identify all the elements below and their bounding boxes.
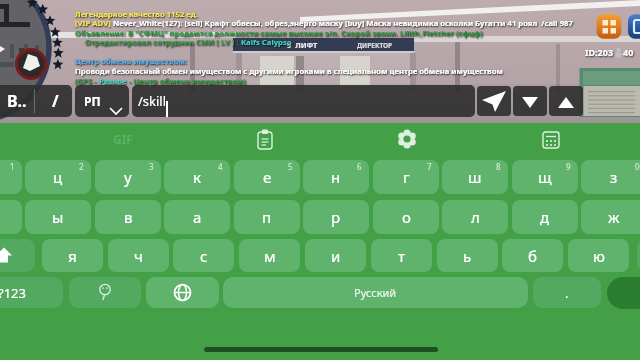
staticText: л [471, 207, 480, 227]
button[interactable]: ж [581, 200, 640, 234]
staticText: з [610, 167, 618, 187]
staticText: н [331, 167, 341, 187]
button[interactable]: а [164, 200, 230, 234]
button[interactable]: д [512, 200, 578, 234]
staticText: 8 [496, 161, 501, 172]
staticText: ш [468, 167, 482, 187]
staticText: /skill [138, 92, 167, 110]
button[interactable]: т [371, 239, 432, 272]
button[interactable]: ш [442, 160, 508, 194]
button[interactable]: Send [477, 86, 511, 116]
staticText: г [403, 167, 410, 187]
staticText: ц [53, 167, 63, 187]
button[interactable]: Change keyboard language [146, 277, 219, 308]
staticText: и [331, 246, 341, 266]
button[interactable]: . [533, 277, 601, 308]
button[interactable]: л [442, 200, 508, 234]
staticText: Объявление: В "СФМЦ" продаются должности… [75, 28, 483, 38]
staticText: 2 [79, 161, 84, 172]
button[interactable]: Scroll chat down [513, 86, 547, 116]
staticText: Never_White(127): [sell] Крафт обвесы, о… [113, 18, 573, 28]
button[interactable]: GIF [101, 126, 145, 152]
staticText: р [331, 207, 341, 227]
staticText: б [528, 246, 537, 266]
button[interactable]: ф [0, 200, 22, 234]
button[interactable]: о [373, 200, 439, 234]
staticText: 9 ЛИФТ [287, 40, 318, 50]
button[interactable]: Scroll chat up [549, 86, 583, 116]
button[interactable]: Settings [391, 126, 423, 152]
button[interactable]: й [0, 160, 22, 194]
button[interactable]: Enter [607, 277, 640, 309]
button[interactable]: Clipboard [249, 127, 281, 153]
button[interactable]: щ [512, 160, 578, 194]
button[interactable]: Shift [0, 239, 35, 272]
staticText: [VIP ADV] [75, 18, 113, 28]
staticText: щ [538, 167, 552, 187]
staticText: 6 [357, 161, 362, 172]
staticText: РП [84, 93, 101, 109]
staticText: Kaifs Calypso [241, 37, 292, 47]
button[interactable]: ю [568, 239, 629, 272]
button[interactable]: Backspace [637, 239, 640, 272]
button[interactable]: ?123 [0, 277, 63, 308]
button[interactable]: Emoji [69, 277, 141, 308]
staticText: д [540, 207, 550, 227]
staticText: 40 [623, 46, 634, 58]
staticText: 1 [10, 161, 15, 172]
staticText: 5 [288, 161, 293, 172]
staticText: к [193, 167, 201, 187]
staticText: а [193, 207, 202, 227]
button[interactable]: РП [75, 85, 129, 117]
staticText: Центр обмена имуществом: [75, 56, 188, 66]
button[interactable]: ч [108, 239, 169, 272]
button[interactable]: Numbers [535, 127, 567, 153]
button[interactable]: / [38, 85, 72, 117]
staticText: (GPS - [75, 76, 99, 86]
staticText: п [262, 207, 272, 227]
button[interactable]: г [373, 160, 439, 194]
staticText: в [124, 207, 133, 227]
staticText: Проводи безопасный обмен имуществом с др… [75, 66, 503, 76]
staticText: ь [463, 246, 472, 266]
staticText: Легендарное качество 1152 ед. [75, 9, 198, 19]
button[interactable]: /skill [132, 85, 475, 117]
staticText: ч [134, 246, 143, 266]
button[interactable]: у [95, 160, 161, 194]
staticText: ДИРЕКТОР [357, 41, 393, 50]
button[interactable]: м [239, 239, 300, 272]
staticText: ы [52, 207, 64, 227]
staticText: Отредактировал сотрудник СМИ [ LV ] : [85, 37, 241, 47]
button[interactable]: и [305, 239, 366, 272]
staticText: Разное [99, 76, 127, 86]
button[interactable]: е [234, 160, 300, 194]
staticText: 0 [635, 161, 640, 172]
button[interactable]: ц [25, 160, 91, 194]
button[interactable]: п [234, 200, 300, 234]
staticText: е [263, 167, 272, 187]
staticText: ID:203 [585, 46, 614, 58]
staticText: GIF [113, 131, 133, 147]
staticText: ?123 [0, 284, 26, 302]
staticText: 7 [427, 161, 432, 172]
staticText: о [402, 207, 411, 227]
button[interactable]: н [303, 160, 369, 194]
button[interactable]: р [303, 200, 369, 234]
button[interactable]: з [581, 160, 640, 194]
button[interactable]: ь [437, 239, 498, 272]
staticText: ю [593, 246, 605, 266]
staticText: с [200, 246, 208, 266]
button[interactable]: Русский [223, 277, 528, 308]
staticText: у [124, 167, 132, 187]
staticText: 3 [149, 161, 154, 172]
button[interactable]: б [502, 239, 563, 272]
button[interactable]: к [164, 160, 230, 194]
staticText: 4 [218, 161, 223, 172]
button[interactable]: я [42, 239, 103, 272]
staticText: Русский [354, 285, 397, 300]
button[interactable]: B.. [0, 85, 34, 117]
staticText: . [565, 284, 569, 302]
button[interactable]: ы [25, 200, 91, 234]
button[interactable]: в [95, 200, 161, 234]
button[interactable]: с [173, 239, 234, 272]
